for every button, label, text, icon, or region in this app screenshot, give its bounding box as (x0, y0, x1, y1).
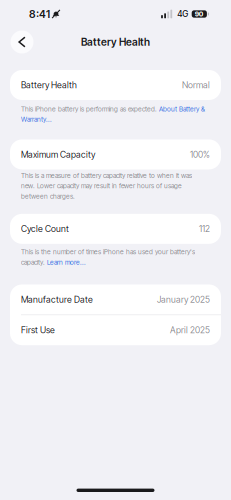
button[interactable]: First Use (10, 315, 221, 345)
staticText: 100% (190, 149, 210, 160)
button[interactable]: Maximum Capacity (10, 139, 221, 169)
staticText: Battery Health (21, 80, 77, 90)
staticText: 8:41 (29, 7, 50, 20)
staticText: Maximum Capacity (21, 149, 95, 160)
staticText: Manufacture Date (21, 294, 93, 305)
button[interactable]: Cycle Count (10, 214, 221, 244)
staticText: 4G (177, 9, 188, 19)
staticText: Normal (182, 80, 210, 90)
staticText: This is a measure of battery capacity re… (21, 171, 192, 200)
staticText: This iPhone battery is performing as exp… (21, 105, 205, 123)
staticText: First Use (21, 325, 55, 335)
staticText: Cycle Count (21, 223, 69, 234)
staticText: April 2025 (170, 325, 210, 335)
button[interactable]: Battery Health (10, 70, 221, 100)
button[interactable]: Manufacture Date (10, 284, 221, 314)
staticText: 90 (195, 10, 204, 18)
button[interactable]: Back (10, 30, 33, 53)
staticText: 112 (199, 223, 210, 234)
staticText: January 2025 (157, 294, 210, 305)
staticText: Battery Health (81, 36, 150, 48)
staticText: This is the number of times iPhone has u… (21, 248, 195, 266)
